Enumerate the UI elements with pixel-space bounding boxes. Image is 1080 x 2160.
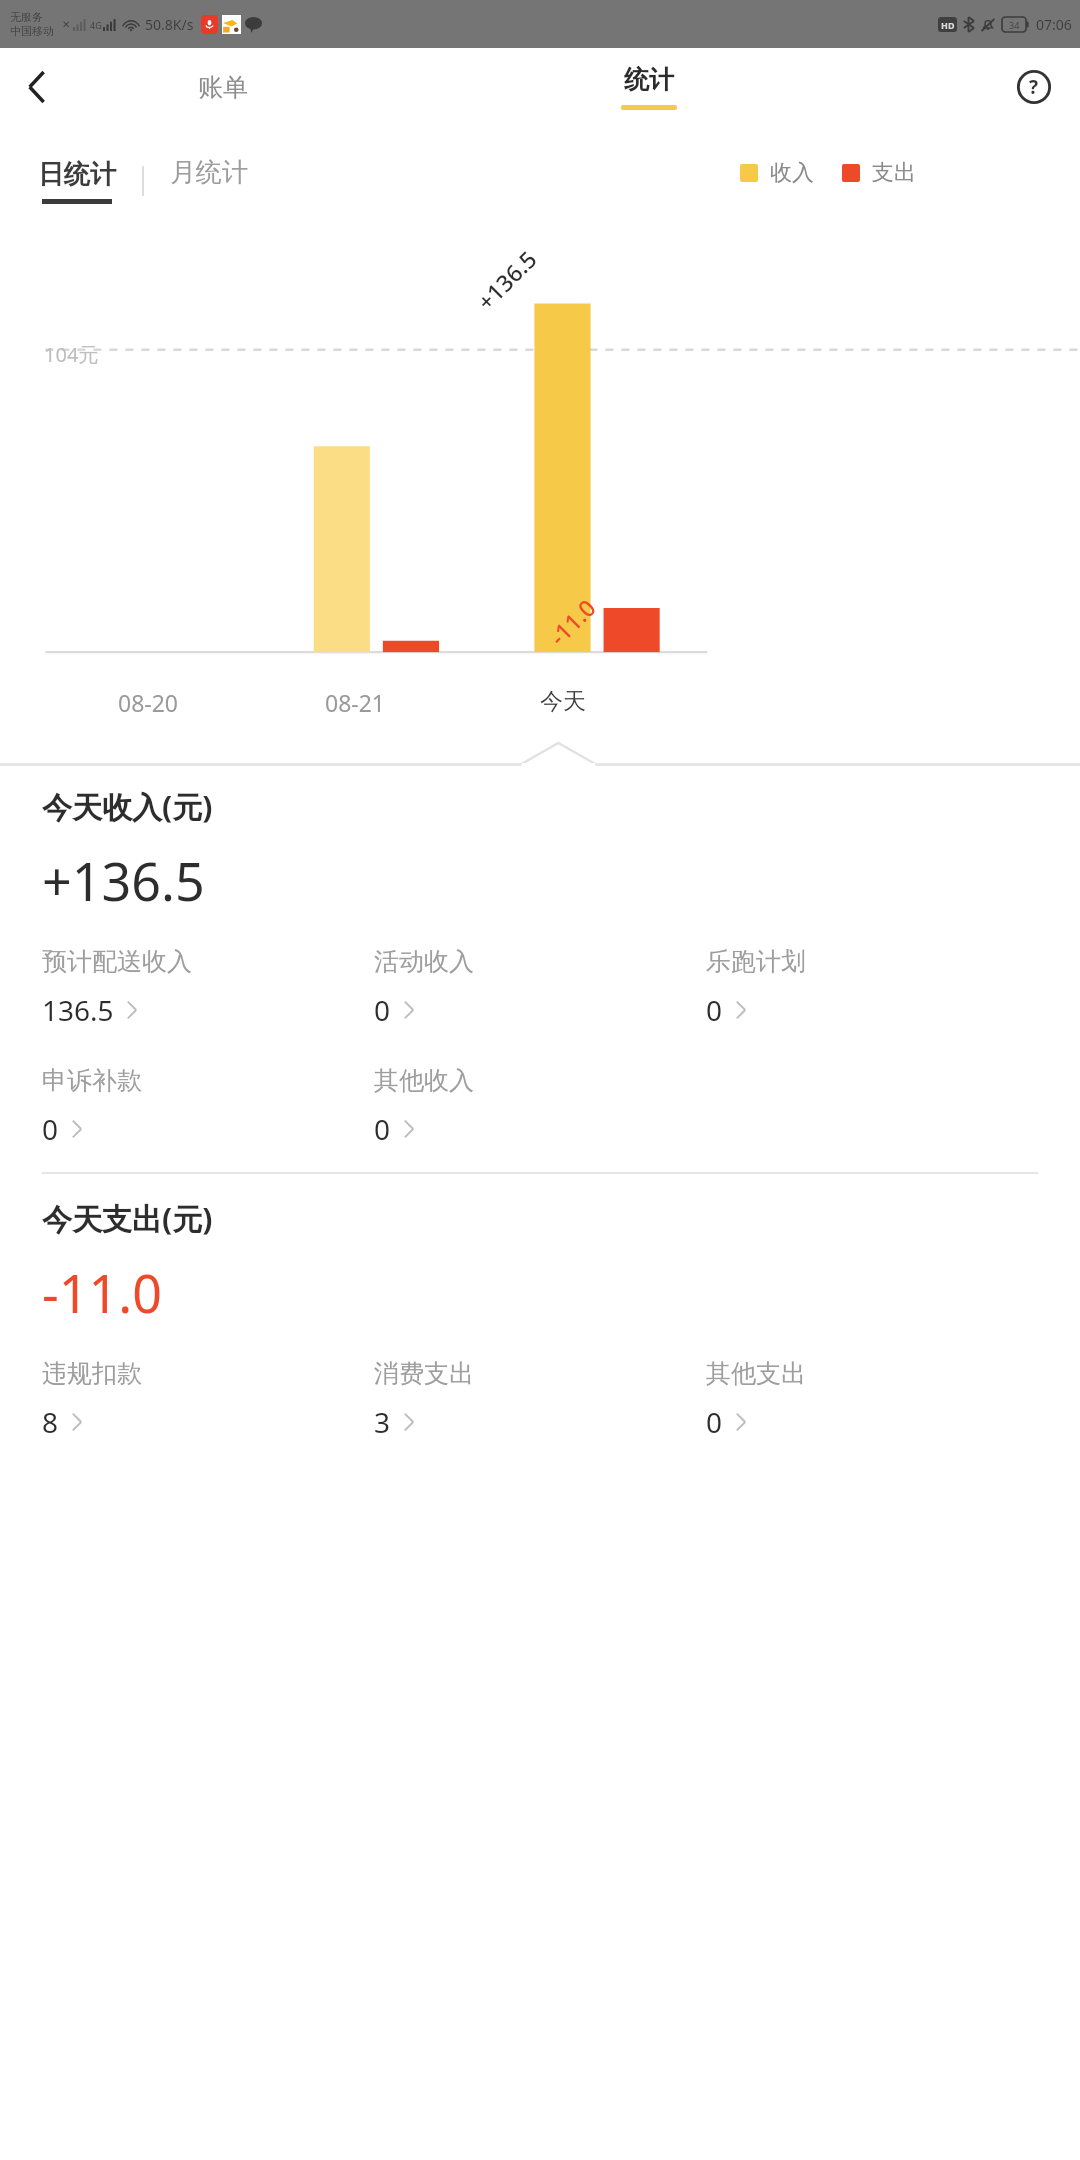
button[interactable]: 月统计 xyxy=(170,156,248,189)
button[interactable]: 日统计 xyxy=(38,158,116,204)
staticText: 104元 xyxy=(44,341,99,368)
staticText: 中国移动 xyxy=(10,24,54,38)
staticText: 活动收入 xyxy=(374,946,474,977)
staticText: +136.5 xyxy=(42,845,205,916)
staticText: 0 xyxy=(374,1110,391,1148)
staticText: 账单 xyxy=(198,72,248,103)
staticText: 无服务 xyxy=(10,10,43,24)
button[interactable]: 申诉补款 xyxy=(42,1065,374,1148)
staticText: 0 xyxy=(706,1403,723,1441)
staticText: 3 xyxy=(374,1403,391,1441)
staticText: 0 xyxy=(374,991,391,1029)
staticText: 违规扣款 xyxy=(42,1358,142,1389)
staticText: 8 xyxy=(42,1403,59,1441)
staticText: 支出 xyxy=(872,159,916,187)
staticText: 月统计 xyxy=(170,156,248,189)
staticText: 日统计 xyxy=(38,158,116,191)
staticText: 4G xyxy=(90,19,102,31)
button[interactable]: 乐跑计划 xyxy=(706,946,1038,1029)
staticText: 今天收入(元) xyxy=(42,786,213,827)
staticText: 预计配送收入 xyxy=(42,946,192,977)
button[interactable]: 活动收入 xyxy=(374,946,706,1029)
staticText: 0 xyxy=(706,991,723,1029)
staticText: 34 xyxy=(1009,19,1020,31)
staticText: 07:06 xyxy=(1036,15,1072,34)
button[interactable]: 账单 xyxy=(168,48,278,126)
staticText: 消费支出 xyxy=(374,1358,474,1389)
staticText: 50.8K/s xyxy=(145,15,194,34)
button[interactable]: 其他支出 xyxy=(706,1358,1038,1441)
button[interactable]: 返回 xyxy=(8,59,64,115)
staticText: 0 xyxy=(42,1110,59,1148)
staticText: ✕ xyxy=(62,19,71,31)
staticText: -11.0 xyxy=(42,1257,162,1328)
staticText: 其他收入 xyxy=(374,1065,474,1096)
staticText: -11.0 xyxy=(542,591,602,651)
staticText: HD xyxy=(941,19,955,31)
staticText: ? xyxy=(1029,74,1039,100)
button[interactable]: 消费支出 xyxy=(374,1358,706,1441)
staticText: 乐跑计划 xyxy=(706,946,806,977)
staticText: 申诉补款 xyxy=(42,1065,142,1096)
staticText: 收入 xyxy=(770,159,814,187)
staticText: 统计 xyxy=(624,64,674,95)
staticText: 今天 xyxy=(540,687,586,716)
button[interactable]: 帮助 xyxy=(1006,59,1062,115)
staticText: 08-20 xyxy=(118,687,179,718)
button[interactable]: 其他收入 xyxy=(374,1065,706,1148)
button[interactable]: 预计配送收入 xyxy=(42,946,374,1029)
button[interactable]: 违规扣款 xyxy=(42,1358,374,1441)
staticText: 今天支出(元) xyxy=(42,1198,213,1239)
staticText: 08-21 xyxy=(325,687,386,718)
button[interactable]: 统计 xyxy=(594,48,704,126)
staticText: +136.5 xyxy=(470,243,543,316)
staticText: 其他支出 xyxy=(706,1358,806,1389)
staticText: 136.5 xyxy=(42,991,114,1029)
